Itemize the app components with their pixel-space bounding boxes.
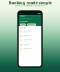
- staticText: Request: [28, 24, 35, 26]
- staticText: ●●●: [37, 12, 40, 14]
- button[interactable]: [18, 47, 42, 51]
- staticText: Recent: [20, 27, 26, 29]
- staticText: Banking made simple: [8, 0, 51, 5]
- staticText: Send: [21, 24, 25, 26]
- staticText: Hello, Alex: [20, 15, 26, 17]
- staticText: $12,480.50: [20, 21, 28, 22]
- button[interactable]: [18, 43, 42, 47]
- staticText: Available balance: [20, 18, 32, 20]
- button[interactable]: [18, 38, 42, 43]
- button[interactable]: Request: [27, 23, 36, 26]
- staticText: 9:41: [20, 12, 23, 14]
- button[interactable]: [18, 29, 42, 34]
- button[interactable]: [18, 34, 42, 38]
- button[interactable]: Send: [20, 23, 26, 26]
- staticText: Open an account in minutes — no paperwor…: [15, 5, 45, 7]
